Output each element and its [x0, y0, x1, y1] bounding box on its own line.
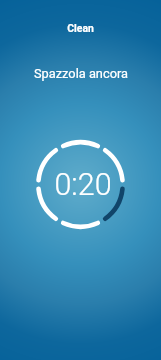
staticText: Spazzola ancora [34, 66, 128, 81]
button[interactable]: Brushing timer [36, 140, 125, 229]
button[interactable]: Clean [67, 22, 94, 34]
staticText: 0:20 [54, 167, 112, 203]
staticText: Clean [67, 22, 94, 34]
